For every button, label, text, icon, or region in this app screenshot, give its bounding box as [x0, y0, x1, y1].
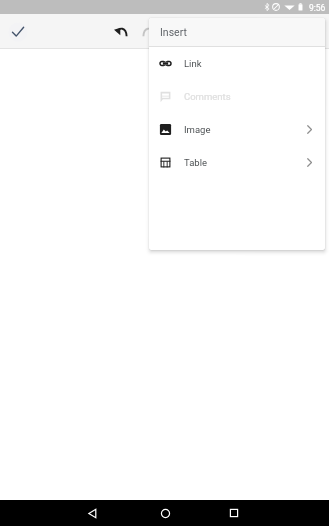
staticText: Table — [184, 157, 207, 168]
button[interactable]: Image — [149, 113, 325, 146]
button[interactable]: Redo — [136, 18, 162, 44]
button[interactable]: Table — [149, 146, 325, 179]
button[interactable]: Back — [79, 500, 105, 526]
button: Comments — [149, 80, 325, 113]
button[interactable]: Undo — [108, 18, 134, 44]
button[interactable]: Home — [152, 500, 178, 526]
button[interactable]: Link — [149, 47, 325, 80]
staticText: 9:56 — [309, 3, 326, 13]
staticText: Link — [184, 58, 202, 69]
staticText: Insert — [160, 26, 187, 38]
button[interactable]: Done — [6, 20, 30, 44]
staticText: Image — [184, 124, 211, 135]
staticText: Comments — [184, 91, 231, 102]
button[interactable]: Recents — [221, 500, 247, 526]
